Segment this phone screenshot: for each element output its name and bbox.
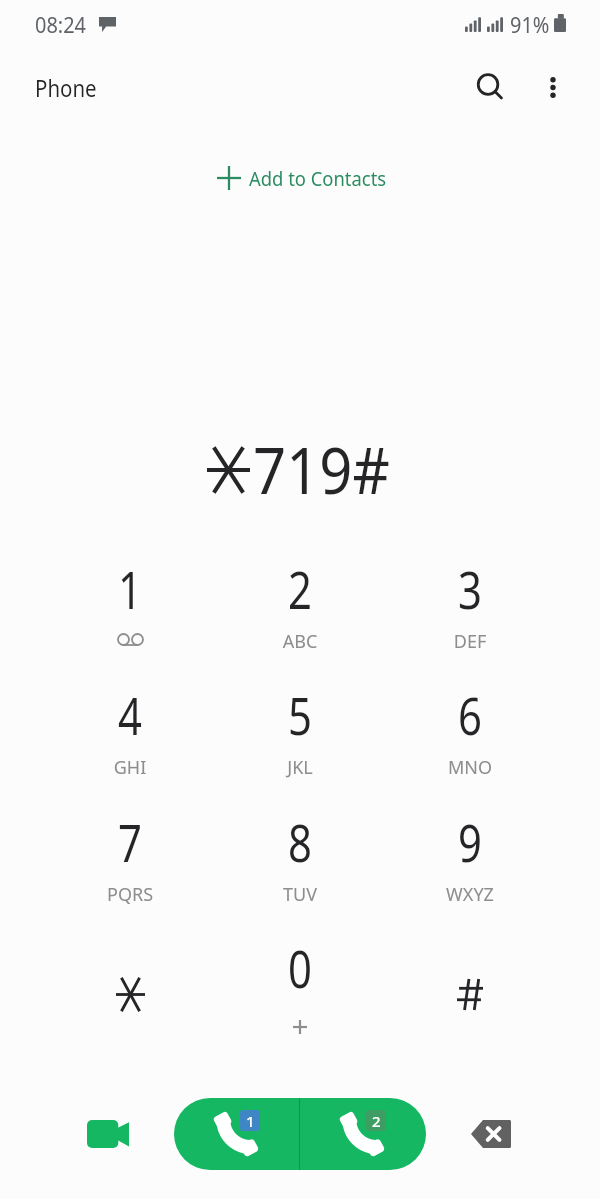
staticText: Add to Contacts — [249, 165, 387, 192]
staticText: GHI — [90, 755, 170, 780]
staticText: 1 — [97, 554, 163, 623]
staticText: 08:24 — [35, 11, 86, 40]
staticText: 2 — [372, 1111, 381, 1131]
staticText: 2 — [267, 554, 333, 623]
button[interactable]: Dial 5 — [220, 664, 380, 784]
button[interactable]: Dial 7 — [50, 791, 210, 911]
button[interactable]: Dial 8 — [220, 791, 380, 911]
staticText: ABC — [260, 629, 340, 654]
staticText: MNO — [430, 755, 510, 780]
staticText: 8 — [267, 807, 333, 876]
button[interactable]: More options — [531, 65, 575, 109]
staticText: 9 — [437, 807, 503, 876]
staticText: 1 — [246, 1111, 255, 1131]
staticText: 3 — [437, 554, 503, 623]
button[interactable]: Dial 0 — [220, 917, 380, 1037]
button[interactable]: Dial # — [390, 917, 550, 1037]
button[interactable]: Dial 2 — [220, 538, 380, 658]
staticText: JKL — [260, 755, 340, 780]
staticText: Phone — [35, 72, 97, 103]
button[interactable]: Backspace — [461, 1104, 521, 1164]
staticText: 6 — [437, 680, 503, 749]
button[interactable]: Dial * — [50, 917, 210, 1037]
staticText: 4 — [97, 680, 163, 749]
button[interactable]: Call with SIM 1 — [174, 1098, 299, 1170]
staticText: 719# — [253, 426, 391, 513]
staticText: WXYZ — [430, 882, 510, 907]
staticText: 5 — [267, 680, 333, 749]
staticText: 7 — [97, 807, 163, 876]
button[interactable]: Video call — [78, 1104, 138, 1164]
staticText: 91% — [510, 11, 550, 40]
button[interactable]: Search — [468, 65, 512, 109]
staticText: TUV — [260, 882, 340, 907]
button[interactable]: Dial 9 — [390, 791, 550, 911]
button[interactable]: Dial 6 — [390, 664, 550, 784]
button[interactable]: Dial 1 — [50, 538, 210, 658]
button[interactable]: Dial 4 — [50, 664, 210, 784]
button[interactable]: Call with SIM 2 — [300, 1098, 426, 1170]
staticText: DEF — [430, 629, 510, 654]
button[interactable]: Dial 3 — [390, 538, 550, 658]
button[interactable]: Add to Contacts — [208, 156, 394, 200]
staticText: PQRS — [90, 882, 170, 907]
staticText: 0 — [267, 933, 333, 1002]
